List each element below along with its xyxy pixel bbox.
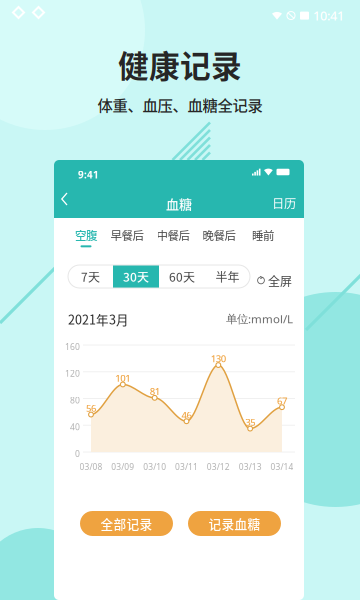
staticText: 40 [70,421,80,433]
staticText: 9:41 [78,168,99,181]
button[interactable]: 返回 [59,191,69,207]
button[interactable]: 记录血糖 [188,511,281,536]
button[interactable]: 7天 [68,265,113,288]
staticText: 80 [70,394,80,406]
button[interactable]: 日历 [270,192,298,214]
staticText: 101 [115,371,130,385]
staticText: 半年 [215,268,239,285]
staticText: 03/14 [270,461,293,472]
staticText: 全屏 [268,272,292,289]
staticText: 睡前 [252,227,274,243]
staticText: 7天 [81,268,100,285]
staticText: 160 [65,341,80,353]
staticText: 81 [150,385,160,398]
staticText: 记录血糖 [208,514,260,533]
staticText: 2021年3月 [68,310,129,328]
staticText: 全部记录 [100,514,152,533]
button[interactable]: 中餐后 [150,226,196,248]
staticText: 03/12 [207,461,230,472]
staticText: 日历 [272,194,296,212]
staticText: 健康记录 [118,42,242,86]
staticText: 120 [65,368,80,379]
staticText: 单位:mmol/L [226,311,293,327]
button[interactable]: 早餐后 [104,226,150,248]
button[interactable]: 晚餐后 [196,226,242,248]
button[interactable]: 全部记录 [80,511,173,536]
staticText: 03/08 [79,461,102,472]
button[interactable]: 60天 [159,265,205,288]
staticText: 46 [181,408,191,421]
staticText: 67 [277,394,287,407]
staticText: 血糖 [166,194,192,213]
staticText: 晚餐后 [202,227,235,243]
staticText: 中餐后 [156,227,189,243]
staticText: 03/10 [143,461,166,472]
button[interactable]: 全屏 [257,272,292,289]
staticText: 03/13 [239,461,262,472]
staticText: 早餐后 [110,227,143,243]
button[interactable]: 空腹 [68,226,104,248]
staticText: 空腹 [75,227,97,243]
staticText: 体重、血压、血糖全记录 [97,93,262,116]
staticText: 03/11 [175,461,198,472]
staticText: 10:41 [313,7,344,24]
button[interactable]: 30天 [113,265,159,288]
button[interactable]: 半年 [205,265,250,288]
staticText: 0 [75,448,80,460]
staticText: 03/09 [111,461,134,472]
staticText: 35 [245,416,255,429]
staticText: 60天 [169,268,195,285]
staticText: 130 [211,352,226,365]
staticText: 30天 [123,268,149,285]
staticText: 56 [86,402,96,415]
button[interactable]: 睡前 [242,226,284,248]
